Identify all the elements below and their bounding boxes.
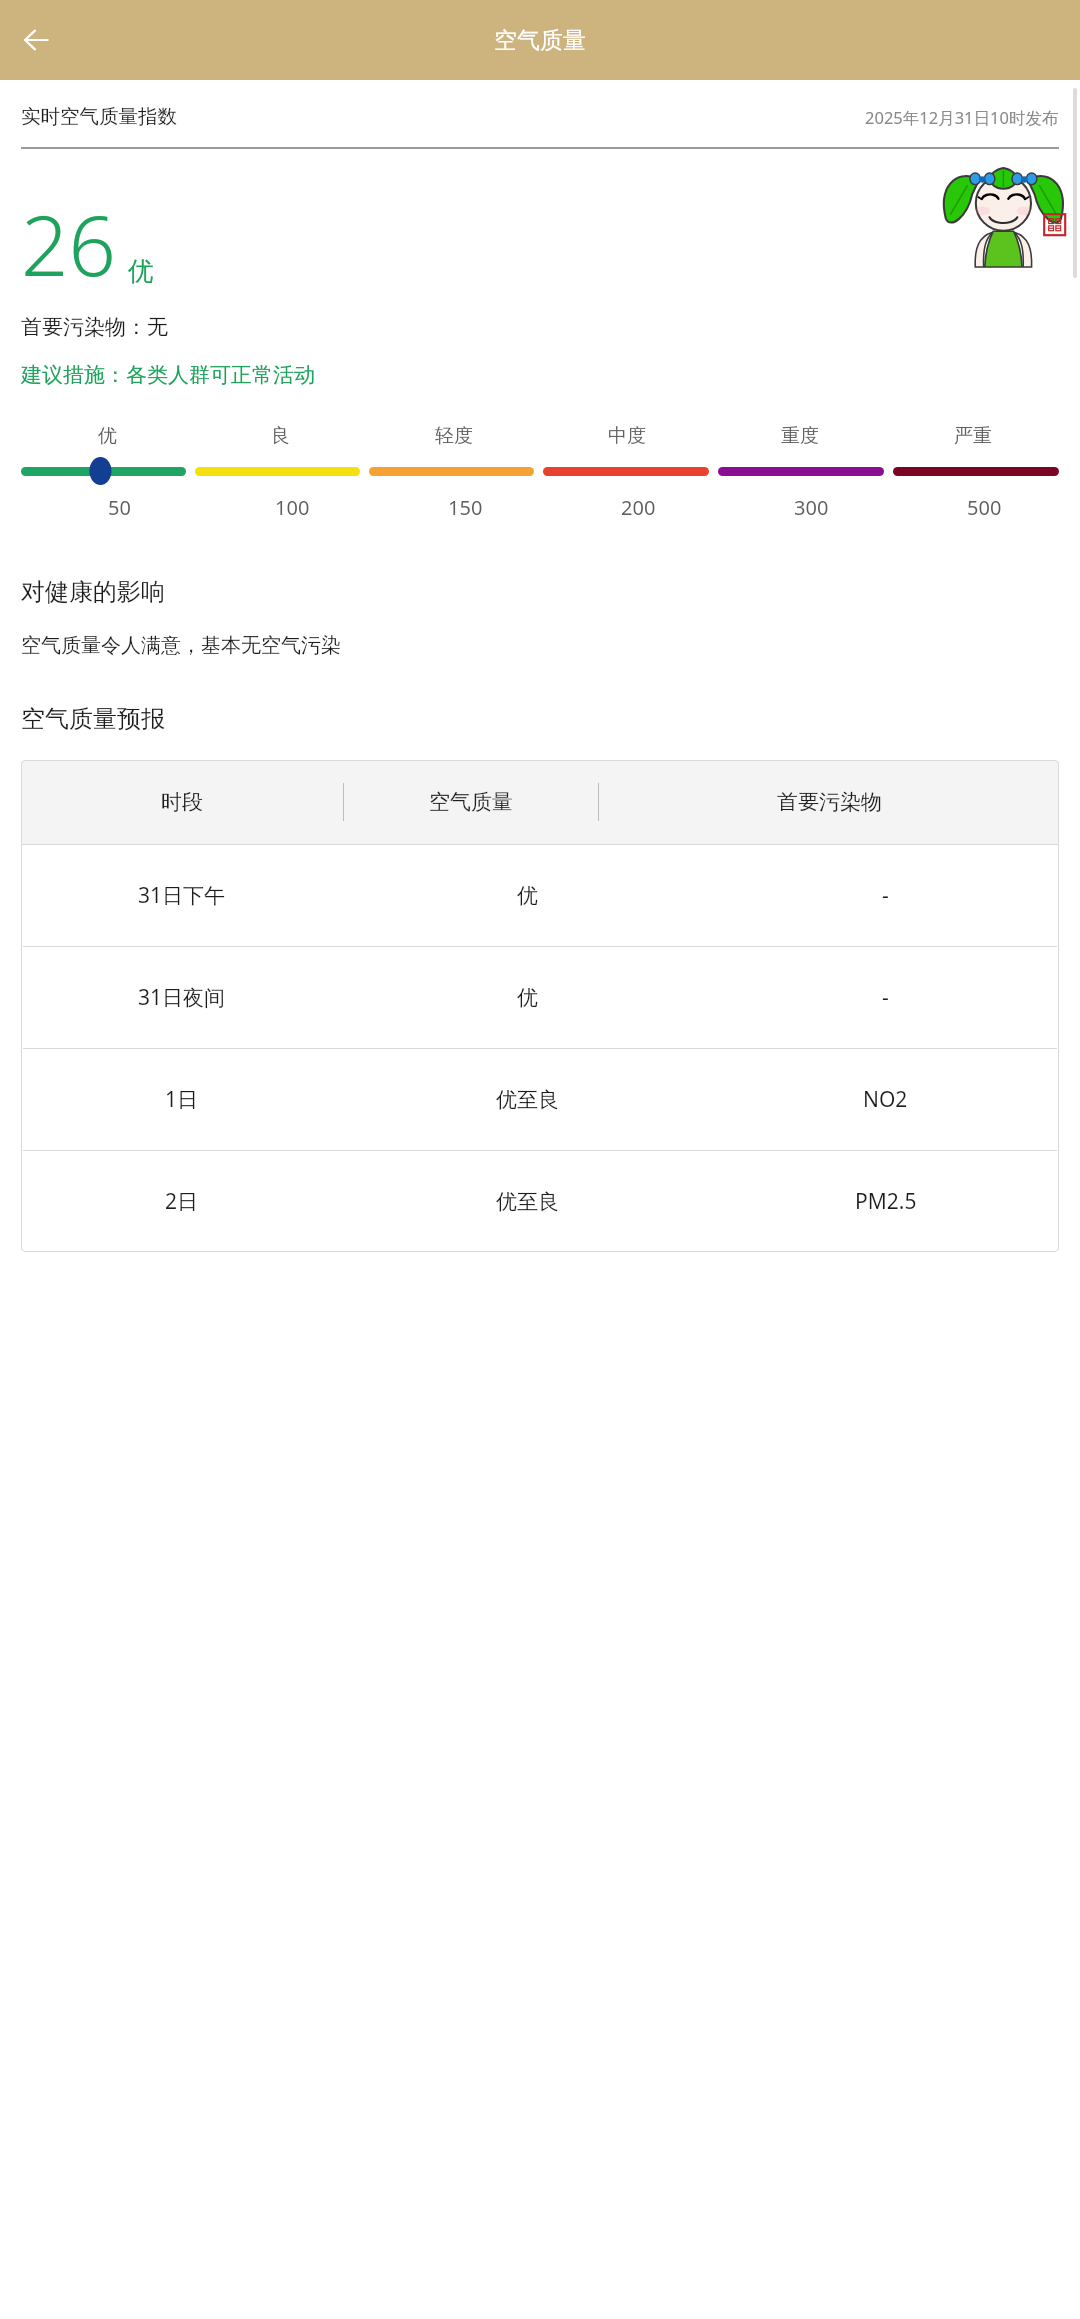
staticText: 31日下午 (138, 881, 226, 910)
staticText: 时段 (161, 789, 203, 815)
staticText: - (882, 983, 889, 1012)
staticText: 300 (794, 494, 829, 521)
button[interactable]: 31日下午 (21, 845, 1059, 946)
staticText: 500 (967, 494, 1002, 521)
button[interactable]: Back (8, 12, 64, 68)
staticText: 空气质量令人满意，基本无空气污染 (21, 633, 341, 658)
staticText: 1日 (165, 1085, 199, 1114)
staticText: 首要污染物：无 (21, 314, 168, 340)
button[interactable]: 2日 (21, 1151, 1059, 1252)
staticText: 优 (98, 424, 117, 448)
staticText: 重度 (781, 424, 819, 448)
staticText: 优 (128, 255, 154, 288)
staticText: 2日 (165, 1187, 199, 1216)
button[interactable]: 31日夜间 (21, 947, 1059, 1048)
staticText: 空气质量 (494, 26, 586, 55)
staticText: 2025年12月31日10时发布 (865, 106, 1059, 129)
staticText: 优至良 (496, 1189, 559, 1215)
staticText: 31日夜间 (138, 983, 226, 1012)
staticText: 空气质量预报 (21, 704, 165, 734)
staticText: PM2.5 (855, 1187, 917, 1216)
staticText: 轻度 (435, 424, 473, 448)
staticText: 100 (275, 494, 310, 521)
staticText: NO2 (863, 1085, 908, 1114)
staticText: 建议措施：各类人群可正常活动 (21, 362, 315, 388)
staticText: 首要污染物 (777, 789, 882, 815)
staticText: 50 (108, 494, 131, 521)
staticText: 中度 (608, 424, 646, 448)
staticText: 优至良 (496, 1087, 559, 1113)
staticText: 实时空气质量指数 (21, 104, 177, 129)
staticText: 200 (621, 494, 656, 521)
staticText: 150 (448, 494, 483, 521)
staticText: 严重 (954, 424, 992, 448)
staticText: 空气质量 (429, 789, 513, 815)
staticText: 对健康的影响 (21, 577, 165, 607)
staticText: 优 (517, 883, 538, 909)
staticText: 良 (271, 424, 290, 448)
button[interactable]: 1日 (21, 1049, 1059, 1150)
staticText: 26 (21, 187, 116, 300)
staticText: 优 (517, 985, 538, 1011)
staticText: - (882, 881, 889, 910)
